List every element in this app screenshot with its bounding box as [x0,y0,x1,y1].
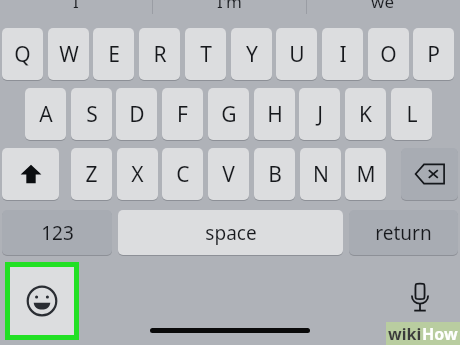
staticText: I [73,0,79,10]
staticText: I'm [217,0,242,10]
button[interactable]: Q [2,28,43,80]
button[interactable]: return [349,210,458,255]
button[interactable]: F [162,88,203,140]
button[interactable]: I'm [159,0,299,20]
staticText: Z [85,160,98,189]
staticText: R [153,40,167,69]
staticText: O [380,40,397,69]
staticText: J [317,100,323,129]
button[interactable]: T [185,28,226,80]
button[interactable]: X [117,148,158,200]
button[interactable]: U [276,28,317,80]
button[interactable]: Y [231,28,272,80]
staticText: U [289,40,305,69]
button[interactable]: N [300,148,341,200]
staticText: T [200,40,212,69]
staticText: G [221,100,237,129]
button[interactable]: Dictation [400,276,440,320]
button[interactable]: space [118,210,343,255]
button[interactable]: L [391,88,432,140]
staticText: I [339,40,347,69]
staticText: A [39,100,53,129]
staticText: M [356,160,376,189]
staticText: L [406,100,418,129]
staticText: N [313,160,329,189]
button[interactable]: Shift [2,148,59,200]
staticText: X [131,160,144,189]
staticText: E [108,40,120,69]
staticText: K [359,100,372,129]
button[interactable]: C [162,148,203,200]
button[interactable]: I [322,28,363,80]
button[interactable]: K [345,88,386,140]
button[interactable]: O [368,28,409,80]
button[interactable]: D [116,88,157,140]
staticText: wiki [388,323,422,345]
staticText: P [427,40,440,69]
button[interactable]: A [25,88,66,140]
button[interactable]: V [208,148,249,200]
button[interactable]: Delete [401,148,458,200]
staticText: V [222,160,235,189]
button[interactable]: H [254,88,295,140]
button[interactable]: S [71,88,112,140]
button[interactable]: M [345,148,386,200]
staticText: 123 [41,220,74,246]
staticText: Q [14,40,31,69]
button[interactable]: R [139,28,180,80]
staticText: W [59,40,79,69]
staticText: F [177,100,188,129]
staticText: B [268,160,282,189]
staticText: C [176,160,190,189]
button[interactable]: 123 [2,210,112,255]
button[interactable]: I [6,0,146,20]
button[interactable]: P [413,28,454,80]
staticText: we [371,0,394,10]
staticText: How [422,323,458,345]
staticText: H [267,100,283,129]
button[interactable]: we [312,0,452,20]
button[interactable]: B [254,148,295,200]
button[interactable]: G [208,88,249,140]
staticText: space [205,220,257,246]
button[interactable]: W [48,28,89,80]
staticText: D [129,100,145,129]
staticText: Y [246,40,258,69]
staticText: S [86,100,98,129]
button[interactable]: Emoji [10,267,74,335]
button[interactable]: E [93,28,134,80]
button[interactable]: Z [71,148,112,200]
button[interactable]: J [299,88,340,140]
staticText: return [375,220,432,246]
